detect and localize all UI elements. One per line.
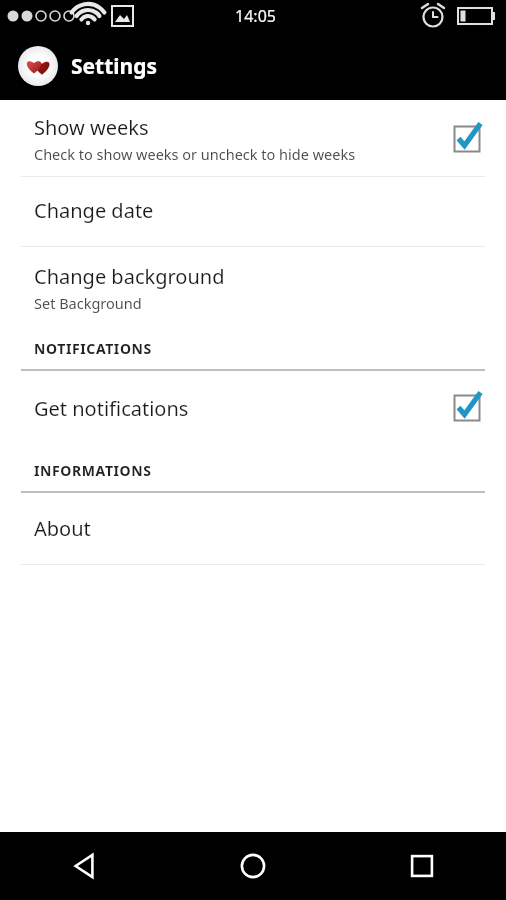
staticText: Change background [34,263,225,290]
staticText: INFORMATIONS [34,461,152,480]
button[interactable]: Change date [0,177,506,246]
staticText: Show weeks [34,114,149,141]
button[interactable]: INFORMATIONS [0,445,506,493]
staticText: Get notifications [34,395,189,422]
button[interactable]: Get notifications [450,391,484,425]
button[interactable]: Show weeks [0,100,506,176]
button[interactable]: About [0,493,506,564]
staticText: Check to show weeks or uncheck to hide w… [34,144,356,164]
button[interactable]: Change background [0,247,506,323]
button[interactable]: Back [52,834,116,898]
button[interactable]: Get notifications [0,371,506,445]
staticText: About [34,515,91,542]
button[interactable]: Recents [390,834,454,898]
staticText: Settings [71,52,158,81]
staticText: 14:05 [235,5,276,27]
button[interactable]: NOTIFICATIONS [0,323,506,371]
staticText: NOTIFICATIONS [34,339,152,358]
staticText: Change date [34,197,154,224]
button[interactable]: Show weeks [450,122,484,156]
button[interactable]: Home [221,834,285,898]
staticText: Set Background [34,293,142,313]
